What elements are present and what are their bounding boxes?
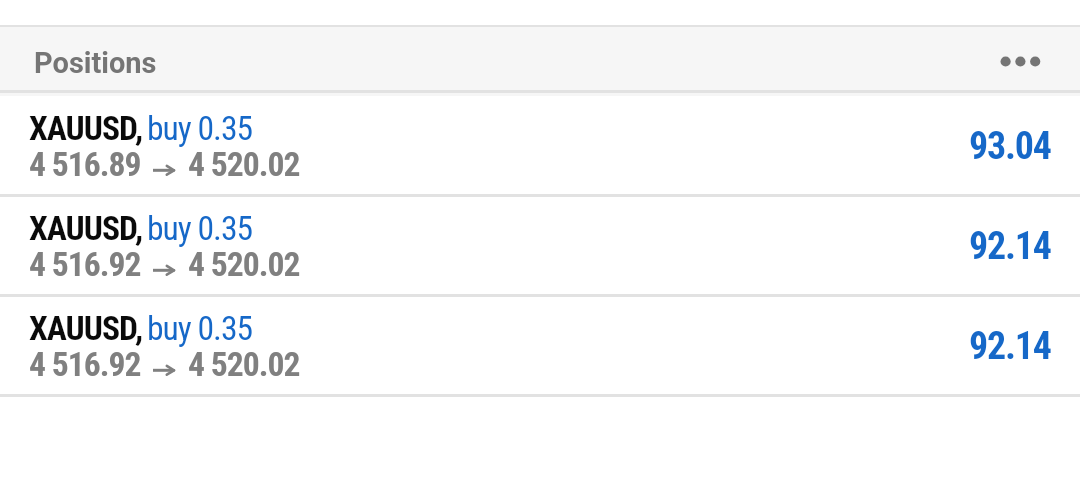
button[interactable]: XAUUSD, (0, 96, 1080, 196)
staticText: Positions (34, 46, 157, 80)
staticText: buy 0.35 (147, 309, 253, 348)
button[interactable]: Positions (0, 27, 1080, 90)
button[interactable]: XAUUSD, (0, 296, 1080, 396)
staticText: 92.14 (969, 224, 1051, 269)
staticText: 4 516.89 (29, 145, 141, 184)
staticText: 4 516.92 (29, 345, 141, 384)
staticText: 4 520.02 (188, 245, 300, 284)
staticText: 4 520.02 (188, 145, 300, 184)
staticText: 4 516.92 (29, 245, 141, 284)
button[interactable]: More options (975, 27, 1065, 90)
staticText: XAUUSD, (29, 209, 143, 248)
button[interactable]: XAUUSD, (0, 196, 1080, 296)
staticText: buy 0.35 (147, 209, 253, 248)
staticText: 93.04 (969, 124, 1051, 169)
staticText: 92.14 (969, 324, 1051, 369)
staticText: XAUUSD, (29, 109, 143, 148)
staticText: buy 0.35 (147, 109, 253, 148)
staticText: XAUUSD, (29, 309, 143, 348)
staticText: 4 520.02 (188, 345, 300, 384)
